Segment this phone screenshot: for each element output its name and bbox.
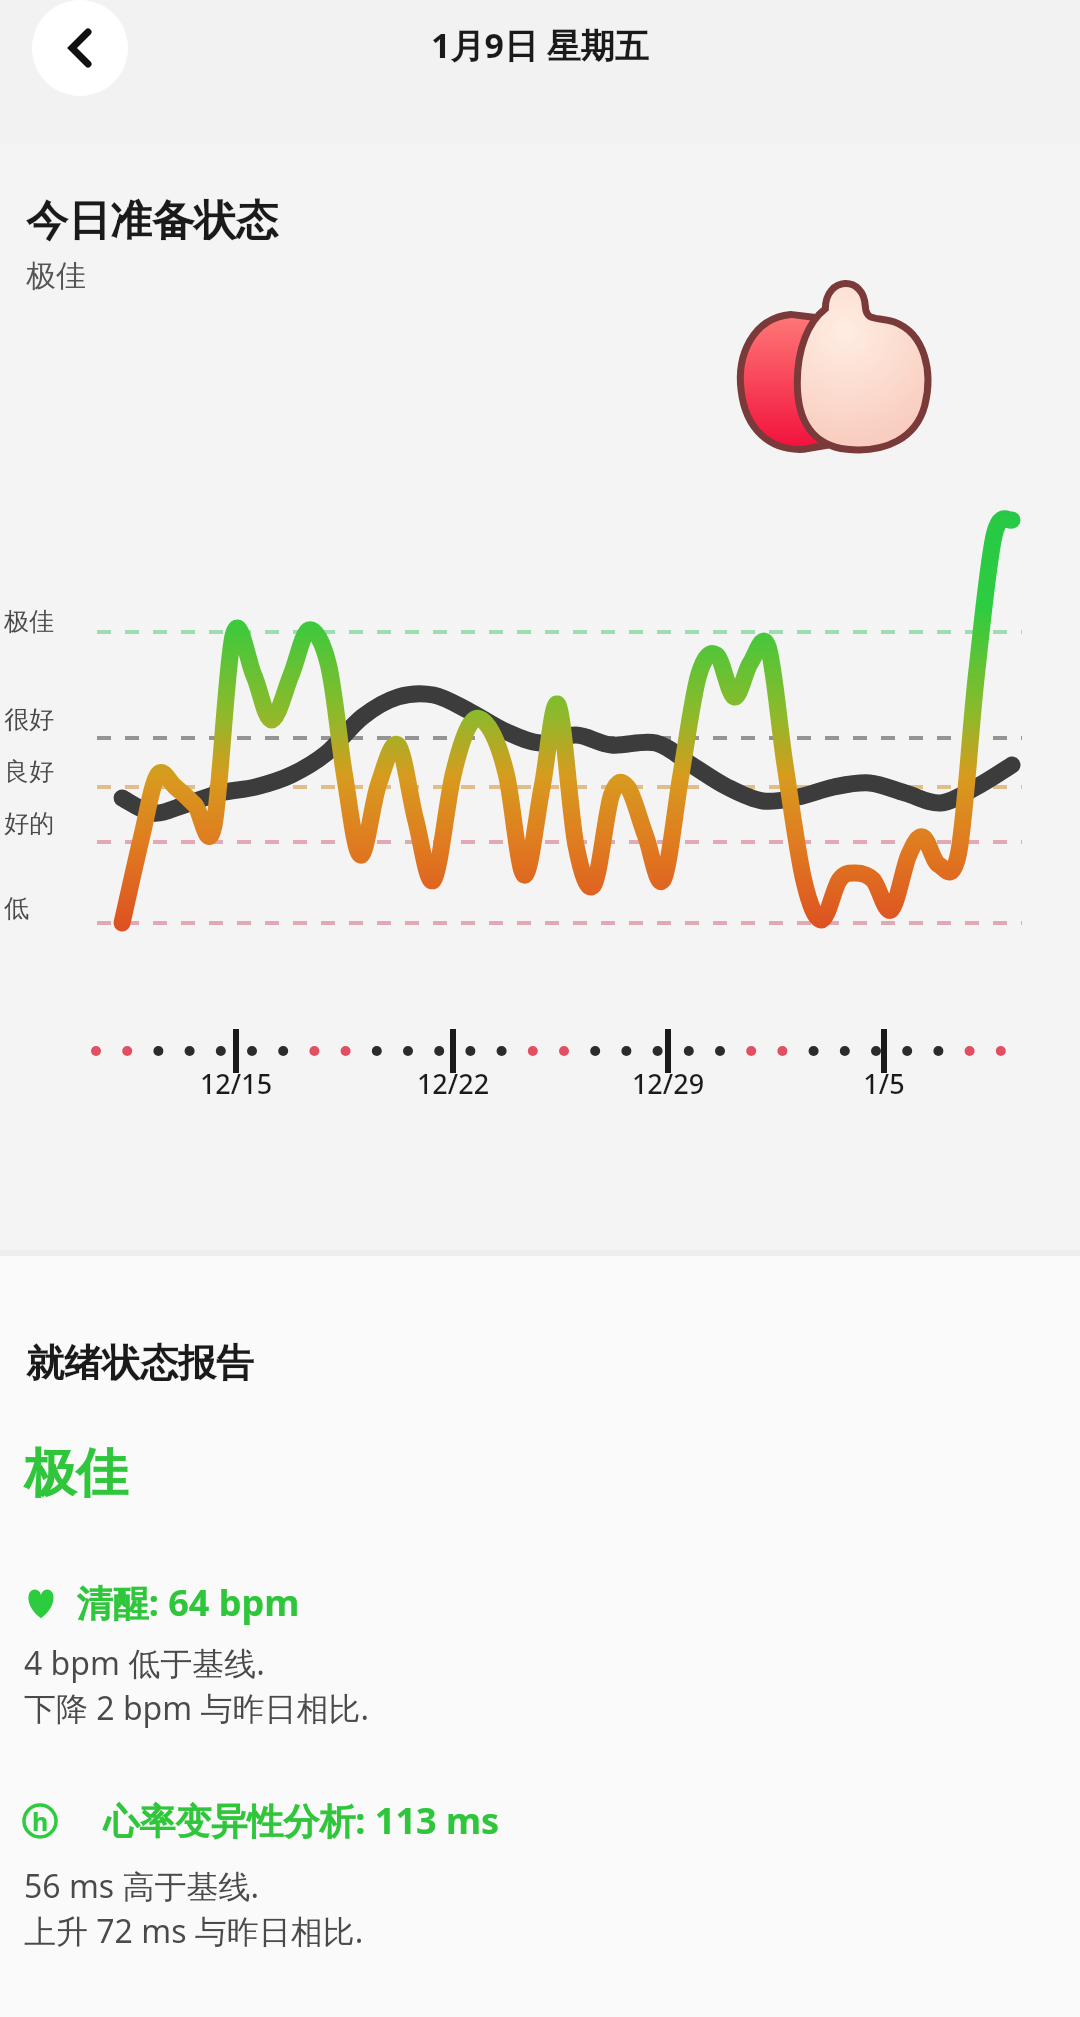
staticText: 56 ms 高于基线. [24, 1864, 260, 1908]
staticText: 极佳 [24, 1441, 128, 1507]
staticText: 就绪状态报告 [26, 1339, 254, 1387]
staticText: 12/15 [176, 1065, 296, 1102]
staticText: 极佳 [26, 257, 86, 295]
staticText: 今日准备状态 [26, 195, 278, 248]
staticText: 12/22 [393, 1065, 513, 1102]
staticText: 4 bpm 低于基线. [24, 1641, 265, 1685]
staticText: 1/5 [824, 1065, 944, 1102]
staticText: 好的 [4, 808, 54, 839]
staticText: 下降 2 bpm 与昨日相比. [24, 1686, 370, 1730]
staticText: 上升 72 ms 与昨日相比. [24, 1909, 364, 1953]
staticText: 低 [4, 893, 29, 924]
staticText: 12/29 [608, 1065, 728, 1102]
staticText: 心率变异性分析: 113 ms [94, 1796, 500, 1845]
staticText: 良好 [4, 756, 54, 787]
button[interactable]: 清醒: 64 bpm [24, 1578, 1080, 1627]
staticText: 很好 [4, 704, 54, 735]
button[interactable]: h [22, 1796, 1080, 1845]
staticText: h [32, 1804, 49, 1838]
staticText: 极佳 [4, 606, 54, 637]
button[interactable]: Back [32, 0, 128, 96]
staticText: 1月9日 星期五 [431, 22, 649, 68]
staticText: 清醒: 64 bpm [58, 1578, 300, 1627]
